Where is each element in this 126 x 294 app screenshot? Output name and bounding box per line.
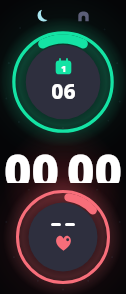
button[interactable]: Theater mode [72,4,94,26]
button[interactable]: Do not disturb / bedtime [32,4,54,26]
staticText: 00 [4,139,60,183]
staticText: 06 [51,77,76,106]
button[interactable]: Calendar, 06 events [9,28,117,136]
staticText: 1 [61,62,67,74]
staticText: 00 [67,139,123,183]
button[interactable]: 00 [0,139,126,183]
button[interactable]: Heart rate, no reading [13,187,113,287]
